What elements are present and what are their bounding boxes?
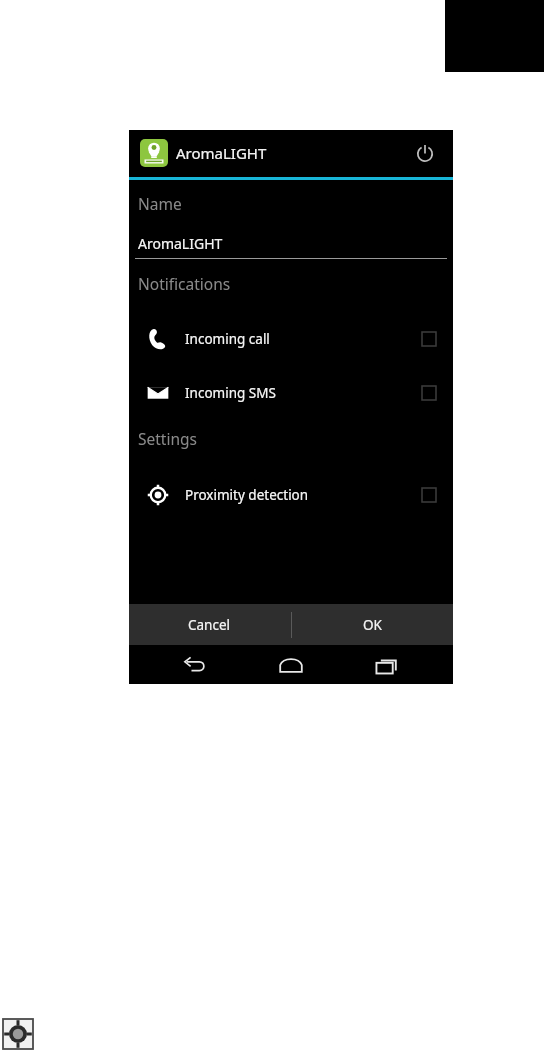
button[interactable]: AromaLIGHT — [129, 130, 453, 177]
button[interactable]: Proximity detection — [129, 473, 453, 517]
staticText: OK — [363, 616, 382, 634]
button[interactable]: Incoming SMS — [129, 371, 453, 415]
staticText: AromaLIGHT — [176, 143, 267, 163]
staticText: Settings — [138, 428, 197, 449]
button[interactable]: Incoming call — [129, 317, 453, 361]
button[interactable]: Cancel — [129, 604, 290, 645]
staticText: Incoming call — [185, 330, 270, 348]
staticText: Proximity detection — [185, 486, 309, 504]
button[interactable]: AromaLIGHT — [138, 234, 223, 253]
staticText: Incoming SMS — [185, 384, 276, 402]
staticText: Notifications — [138, 273, 231, 294]
staticText: Cancel — [188, 616, 231, 634]
button[interactable]: Recents — [373, 651, 401, 679]
staticText: Name — [138, 193, 182, 214]
button[interactable]: Home — [277, 651, 305, 679]
button[interactable]: Back — [181, 651, 209, 679]
button[interactable]: Power — [410, 139, 440, 167]
button[interactable]: OK — [292, 604, 453, 645]
